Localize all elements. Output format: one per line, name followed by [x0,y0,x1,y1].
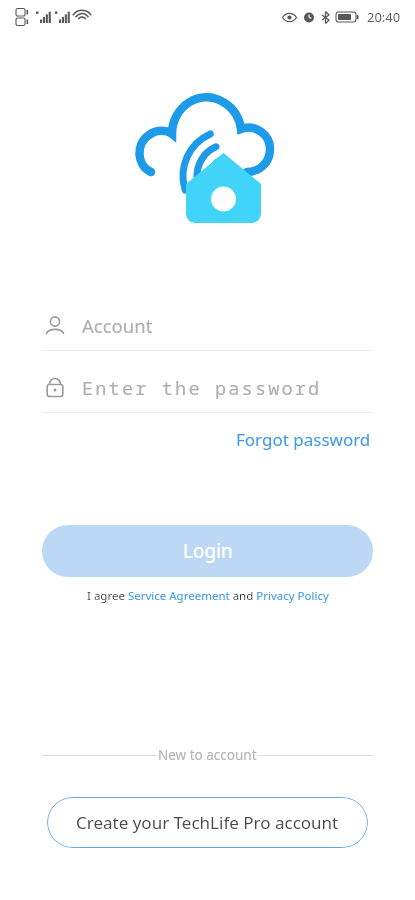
staticText: Forgot password [236,428,371,451]
staticText: Enter the password [82,375,322,400]
button[interactable]: Create your TechLife Pro account [47,797,368,848]
button[interactable]: Enter the password [42,362,373,413]
button[interactable]: Account [42,300,373,351]
staticText: New to account [158,746,257,764]
button[interactable]: Login [42,525,373,577]
staticText: Create your TechLife Pro account [76,811,339,834]
staticText: Account [82,313,153,338]
staticText: Login [183,538,233,564]
button[interactable]: Forgot password [234,424,373,455]
staticText: I agree Service Agreement and Privacy Po… [87,588,329,604]
staticText: 20:40 [367,8,401,26]
